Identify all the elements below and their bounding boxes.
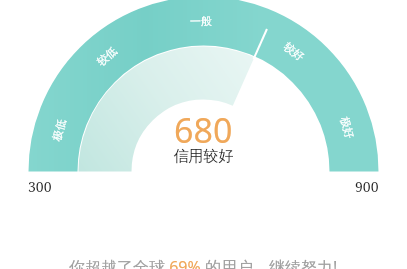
button[interactable]: 信用分 680 信用较好 bbox=[0, 0, 407, 269]
